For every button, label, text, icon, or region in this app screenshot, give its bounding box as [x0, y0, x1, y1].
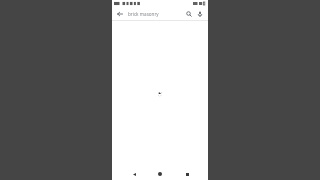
button[interactable]: Back — [129, 169, 139, 179]
button[interactable]: Voice search — [195, 9, 205, 19]
button[interactable]: brick masonry — [128, 7, 182, 20]
button[interactable]: Recent apps — [182, 169, 192, 179]
button[interactable]: Back — [115, 9, 125, 19]
button[interactable]: Home — [155, 169, 165, 179]
button[interactable]: Search — [184, 9, 194, 19]
staticText: brick masonry — [128, 11, 159, 17]
